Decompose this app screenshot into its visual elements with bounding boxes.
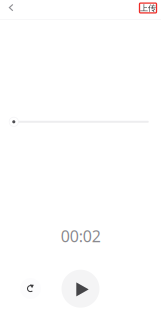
staticText: 00:02	[61, 225, 101, 247]
staticText: 上传	[140, 3, 156, 13]
button[interactable]: 上传	[139, 3, 156, 13]
button[interactable]: Restart recording	[17, 275, 43, 301]
button[interactable]: Play	[61, 270, 99, 308]
button[interactable]: Back	[0, 0, 24, 18]
